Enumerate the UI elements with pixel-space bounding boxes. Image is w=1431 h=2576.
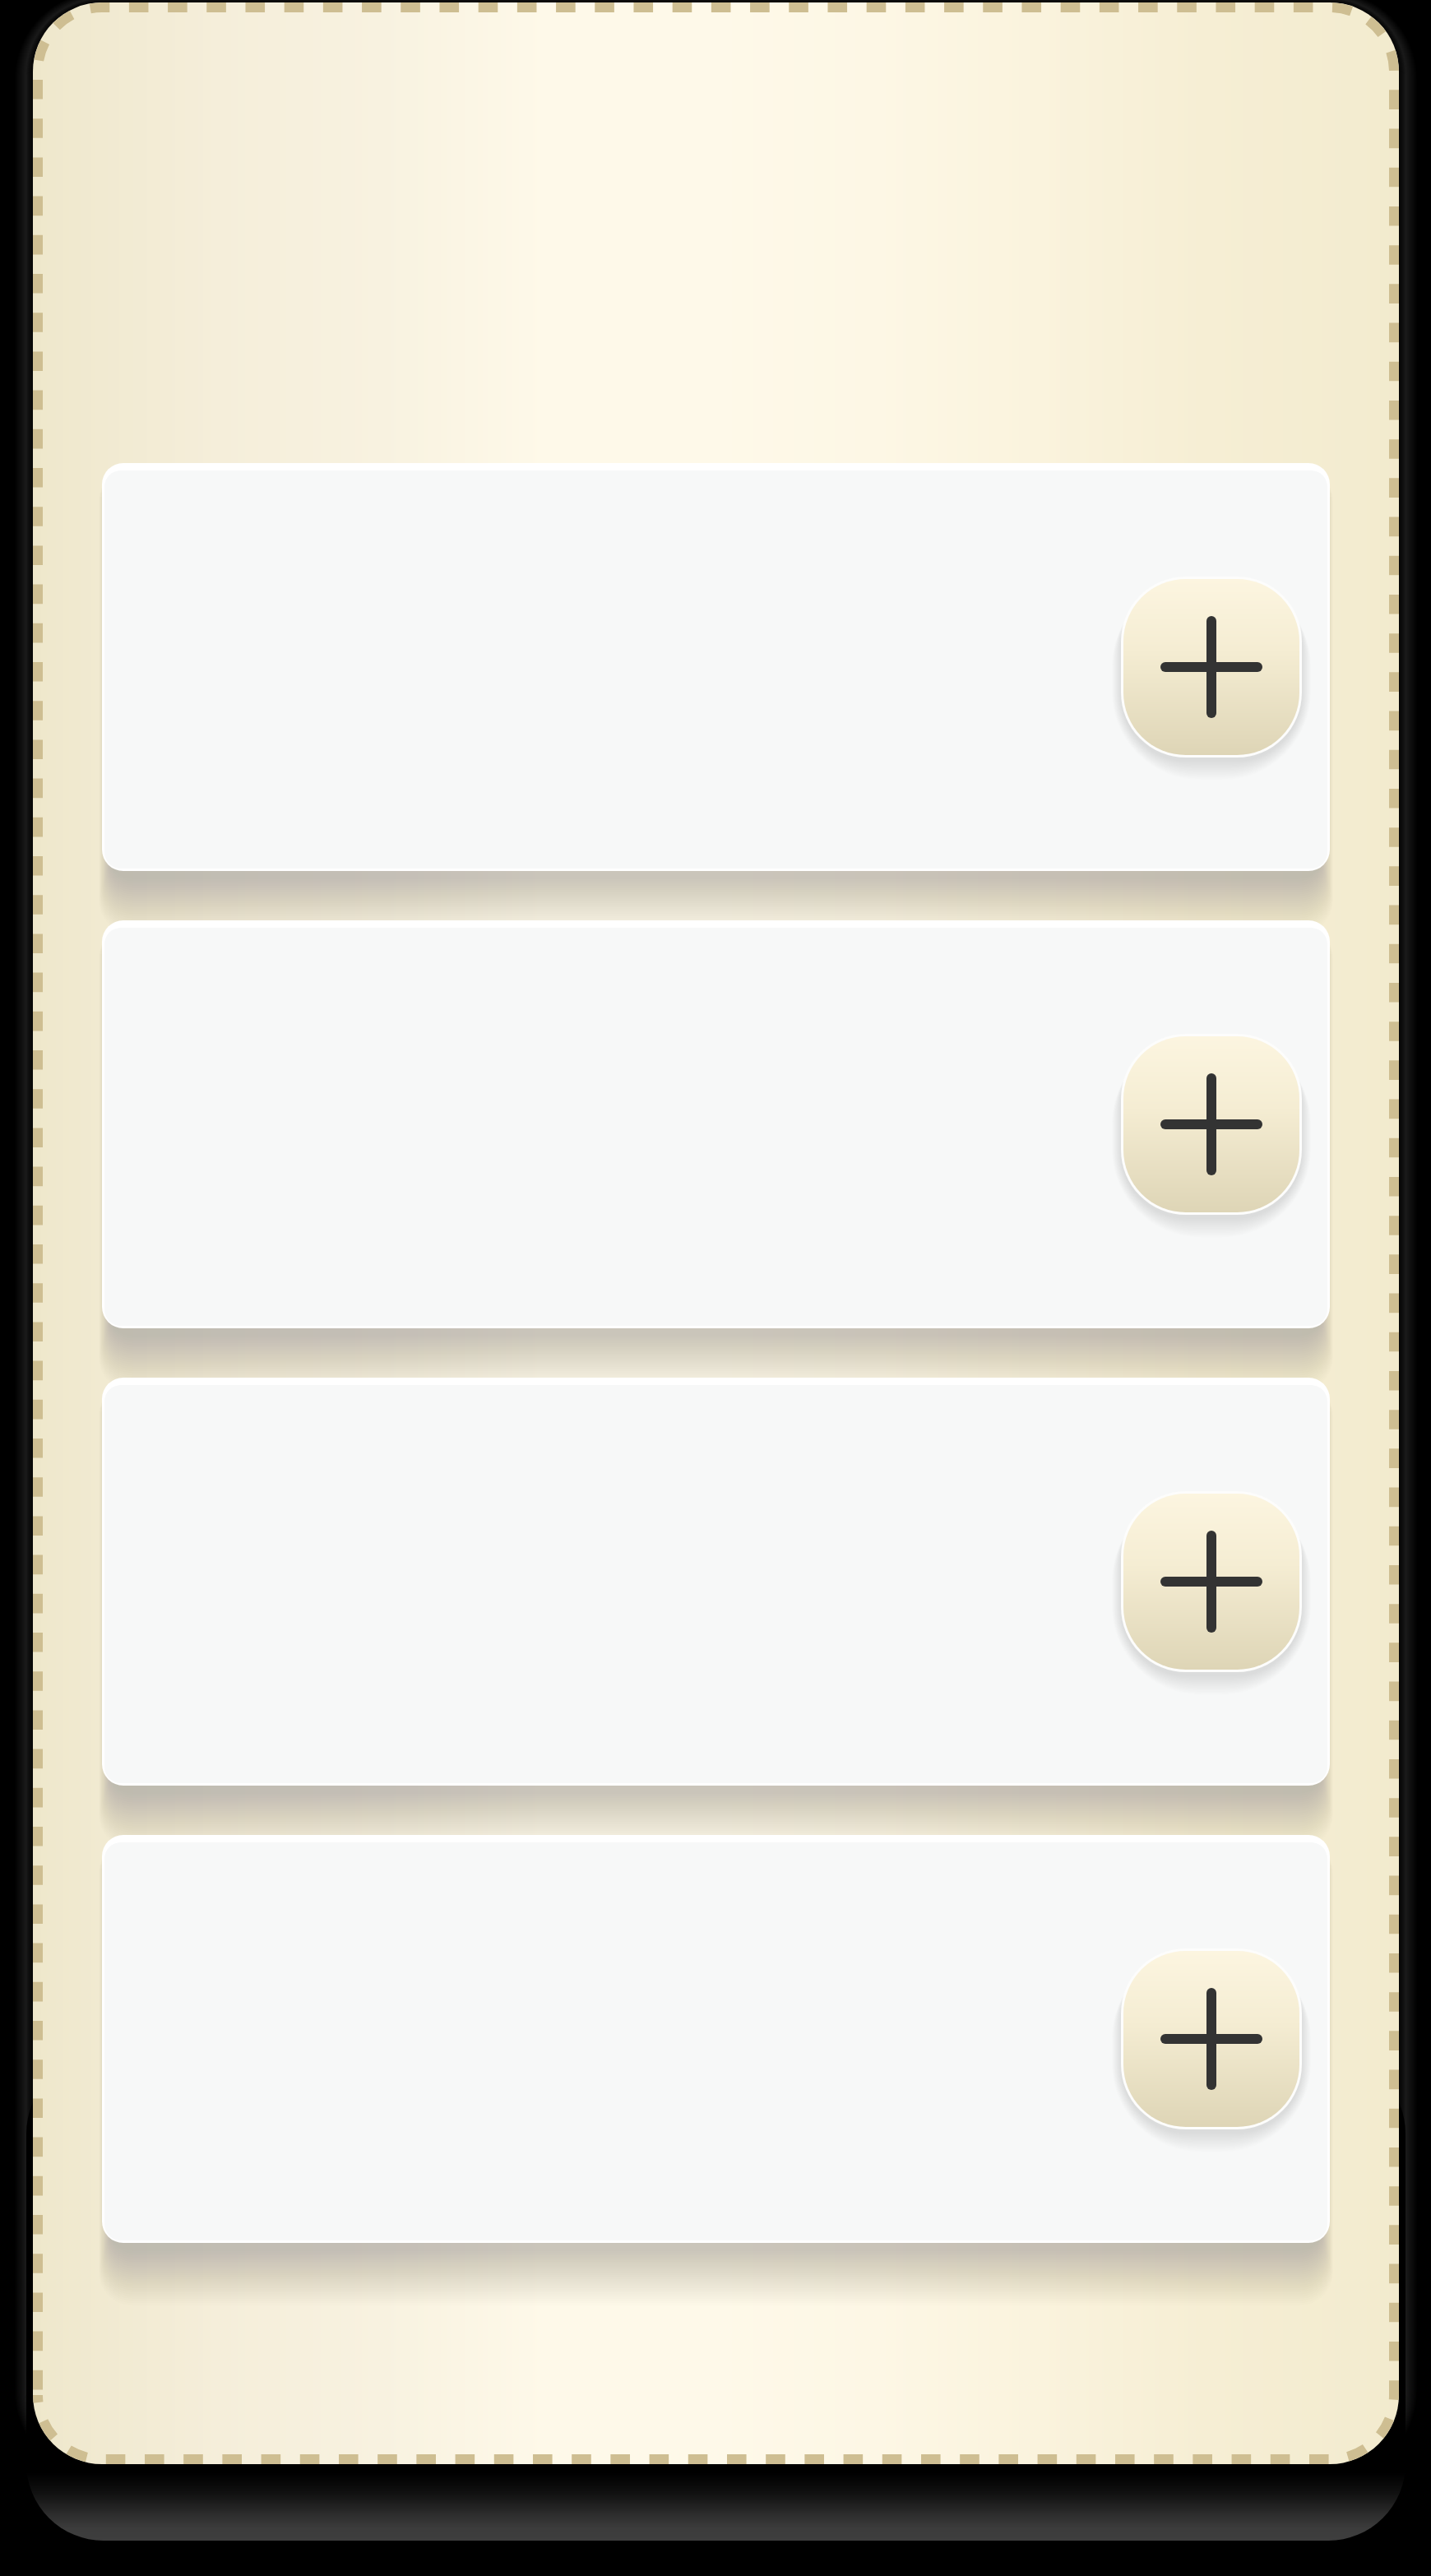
button[interactable] bbox=[102, 1835, 1330, 2243]
button[interactable] bbox=[102, 920, 1330, 1328]
button[interactable]: Add bbox=[1123, 1951, 1299, 2127]
button[interactable] bbox=[102, 1378, 1330, 1786]
button[interactable]: Add bbox=[1123, 1494, 1299, 1670]
button[interactable] bbox=[102, 463, 1330, 871]
button[interactable]: Add bbox=[1123, 1036, 1299, 1212]
button[interactable]: Add bbox=[1123, 579, 1299, 755]
